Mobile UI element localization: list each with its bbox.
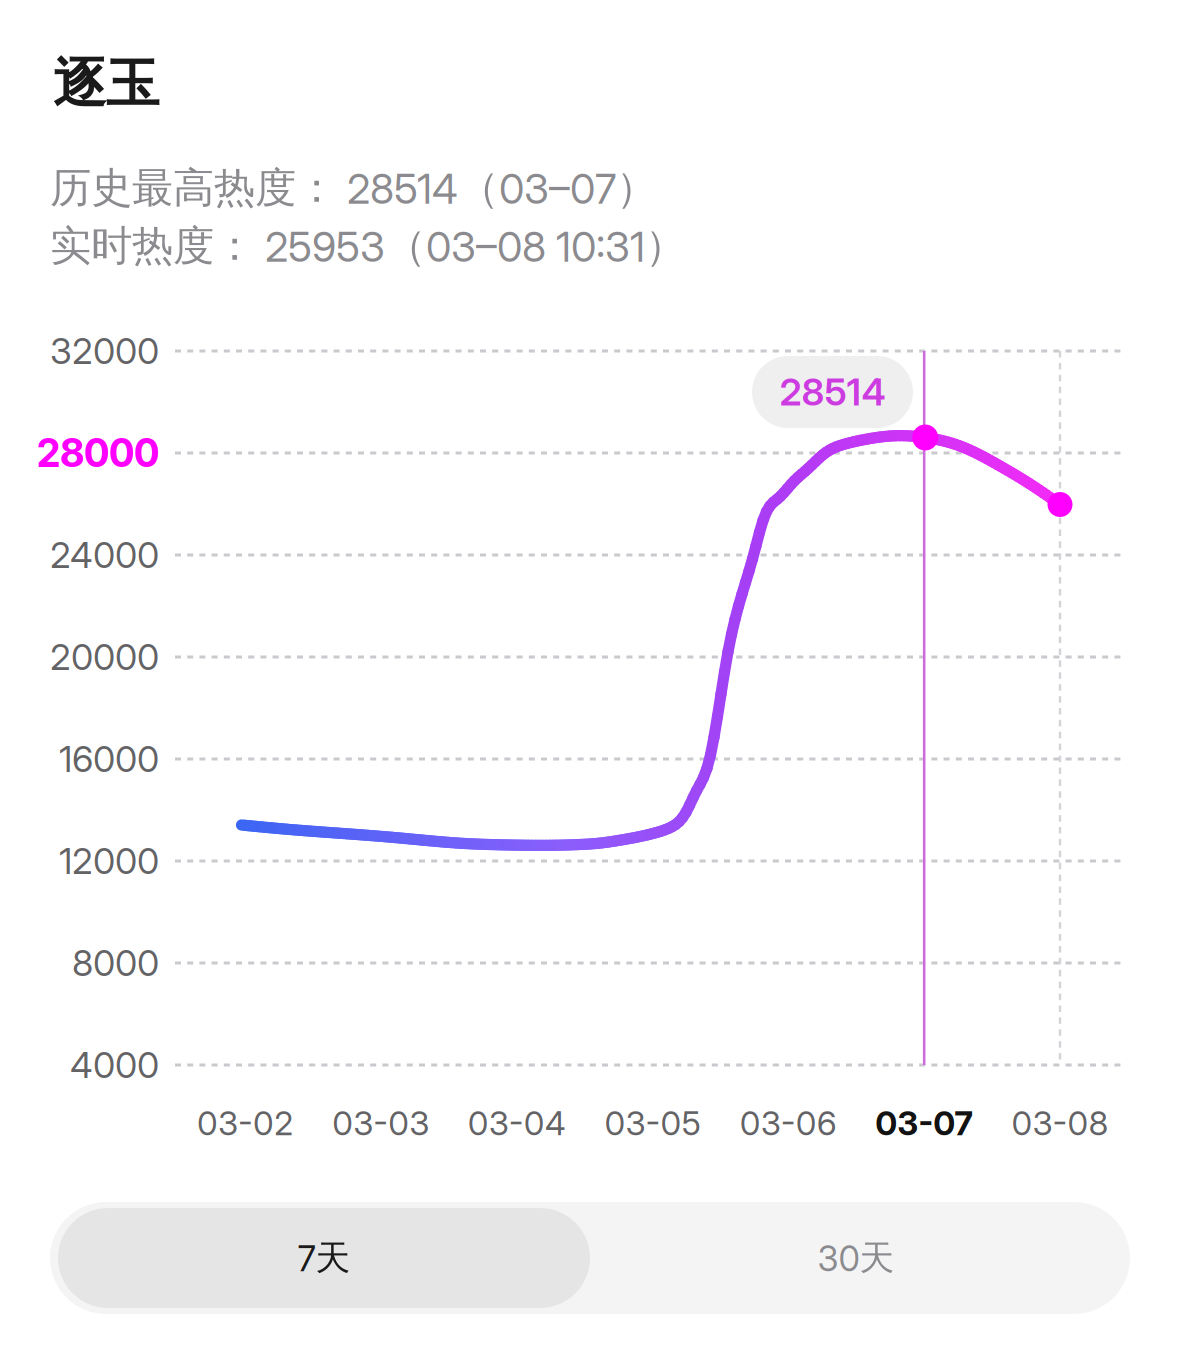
button[interactable]: 30天 [590,1208,1122,1308]
staticText: 03-07 [875,1103,973,1143]
staticText: 32000 [50,329,159,373]
button[interactable]: 7天 [58,1208,590,1308]
staticText: 28000 [37,430,159,476]
staticText: 03-05 [604,1103,700,1143]
staticText: 03-04 [468,1103,566,1143]
staticText: 03-03 [332,1103,429,1143]
staticText: 4000 [70,1043,159,1087]
staticText: 16000 [59,737,159,781]
staticText: 28514 [779,369,885,415]
staticText: 历史最高热度： 28514（03–07） [50,162,657,214]
staticText: 03-06 [740,1103,837,1143]
staticText: 实时热度： 25953（03–08 10:31） [50,220,686,272]
staticText: 8000 [72,941,159,985]
staticText: 30天 [817,1236,894,1280]
staticText: 03-02 [197,1103,293,1143]
staticText: 12000 [59,839,159,883]
staticText: 24000 [50,533,159,577]
staticText: 03-08 [1011,1103,1108,1143]
staticText: 逐玉 [53,50,159,118]
staticText: 20000 [50,635,159,679]
staticText: 7天 [297,1236,350,1280]
